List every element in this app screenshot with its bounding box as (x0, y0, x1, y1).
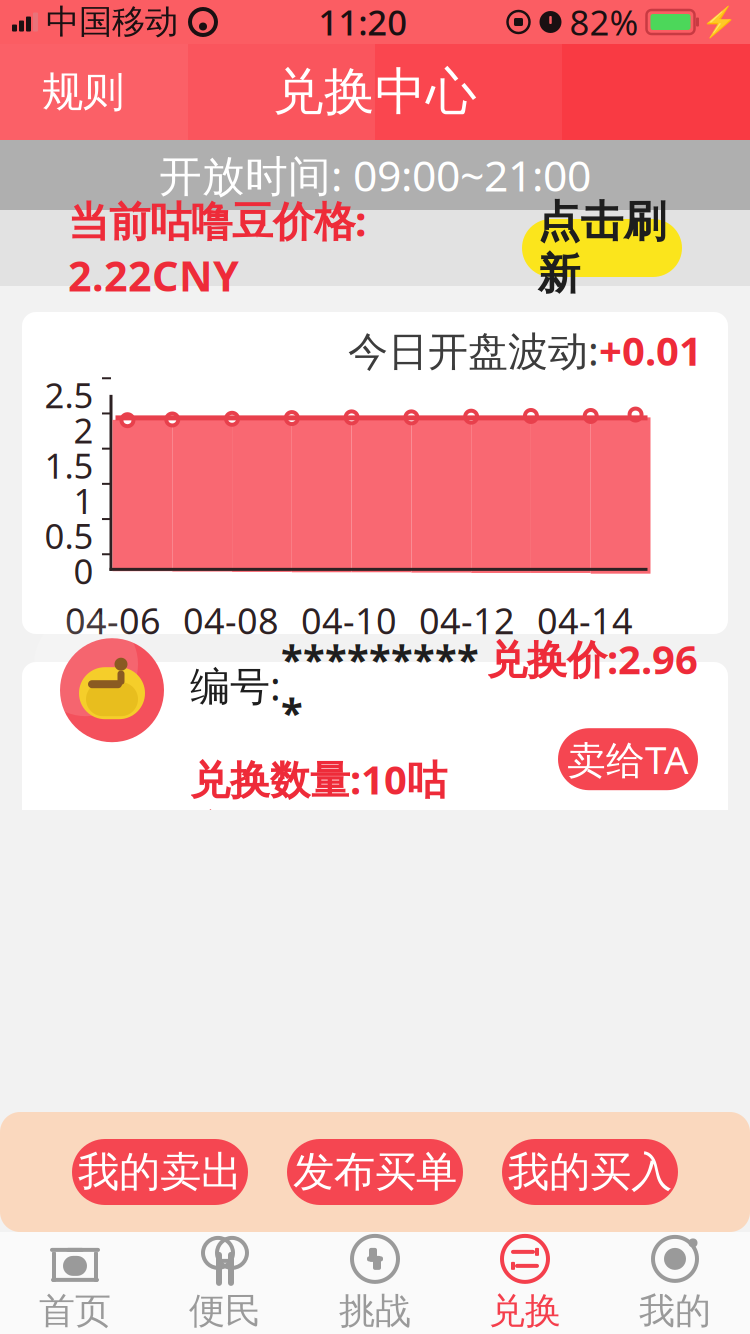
staticText: 04-14 (537, 596, 633, 644)
staticText: 便民 (189, 1289, 261, 1333)
staticText: 兑换数量:10咕噜豆 (190, 752, 447, 855)
button[interactable]: 发布买单 (287, 1139, 463, 1205)
button[interactable]: 便民 (150, 1233, 300, 1333)
staticText: 编号: (190, 659, 281, 712)
staticText: 我的 (639, 1289, 711, 1333)
staticText: 开放时间: 09:00~21:00 (159, 147, 591, 203)
button[interactable]: 点击刷新 (522, 219, 682, 277)
button[interactable]: 兑换 (450, 1233, 600, 1333)
staticText: +0.01 (599, 324, 702, 377)
staticText: 11:20 (318, 0, 407, 45)
button[interactable]: 挑战 (300, 1233, 450, 1333)
staticText: 0 (73, 548, 93, 594)
staticText: 2 (73, 407, 93, 453)
button[interactable]: 我的买入 (502, 1139, 678, 1205)
staticText: 今日开盘波动: (348, 324, 599, 377)
staticText: 04-08 (183, 596, 279, 644)
button[interactable]: 卖给TA (558, 728, 698, 790)
staticText: 发布买单 (293, 1147, 457, 1197)
staticText: 兑换 (489, 1289, 561, 1333)
staticText: 0.5 (44, 513, 93, 559)
staticText: 1.5 (44, 442, 93, 488)
staticText: 兑换倍数:10 (190, 1105, 407, 1158)
button[interactable]: 规则 (26, 57, 140, 127)
staticText: 首页 (39, 1289, 111, 1333)
staticText: 当前咕噜豆价格:2.22CNY (68, 193, 367, 303)
button[interactable]: 首页 (0, 1233, 150, 1333)
staticText: 兑换中心 (273, 61, 477, 123)
staticText: 中国移动 (46, 1, 178, 42)
staticText: 点击刷新 (537, 196, 666, 300)
staticText: 规则 (42, 67, 124, 117)
staticText: 04-06 (65, 596, 161, 644)
staticText: 82% (569, 0, 638, 45)
staticText: 卖给TA (567, 733, 689, 785)
staticText: 2.5 (44, 372, 93, 418)
staticText: ********** (281, 632, 479, 738)
button[interactable]: 我的卖出 (72, 1139, 248, 1205)
staticText: ⚡ (701, 5, 738, 39)
staticText: 兑换价:2.96 (487, 632, 698, 685)
staticText: 我的买入 (508, 1147, 672, 1197)
staticText: 挑战 (339, 1289, 411, 1333)
staticText: 1 (73, 477, 93, 523)
staticText: 04-12 (419, 596, 515, 644)
button[interactable]: 我的 (600, 1233, 750, 1333)
staticText: 我的卖出 (78, 1147, 242, 1197)
staticText: 04-10 (301, 596, 397, 644)
